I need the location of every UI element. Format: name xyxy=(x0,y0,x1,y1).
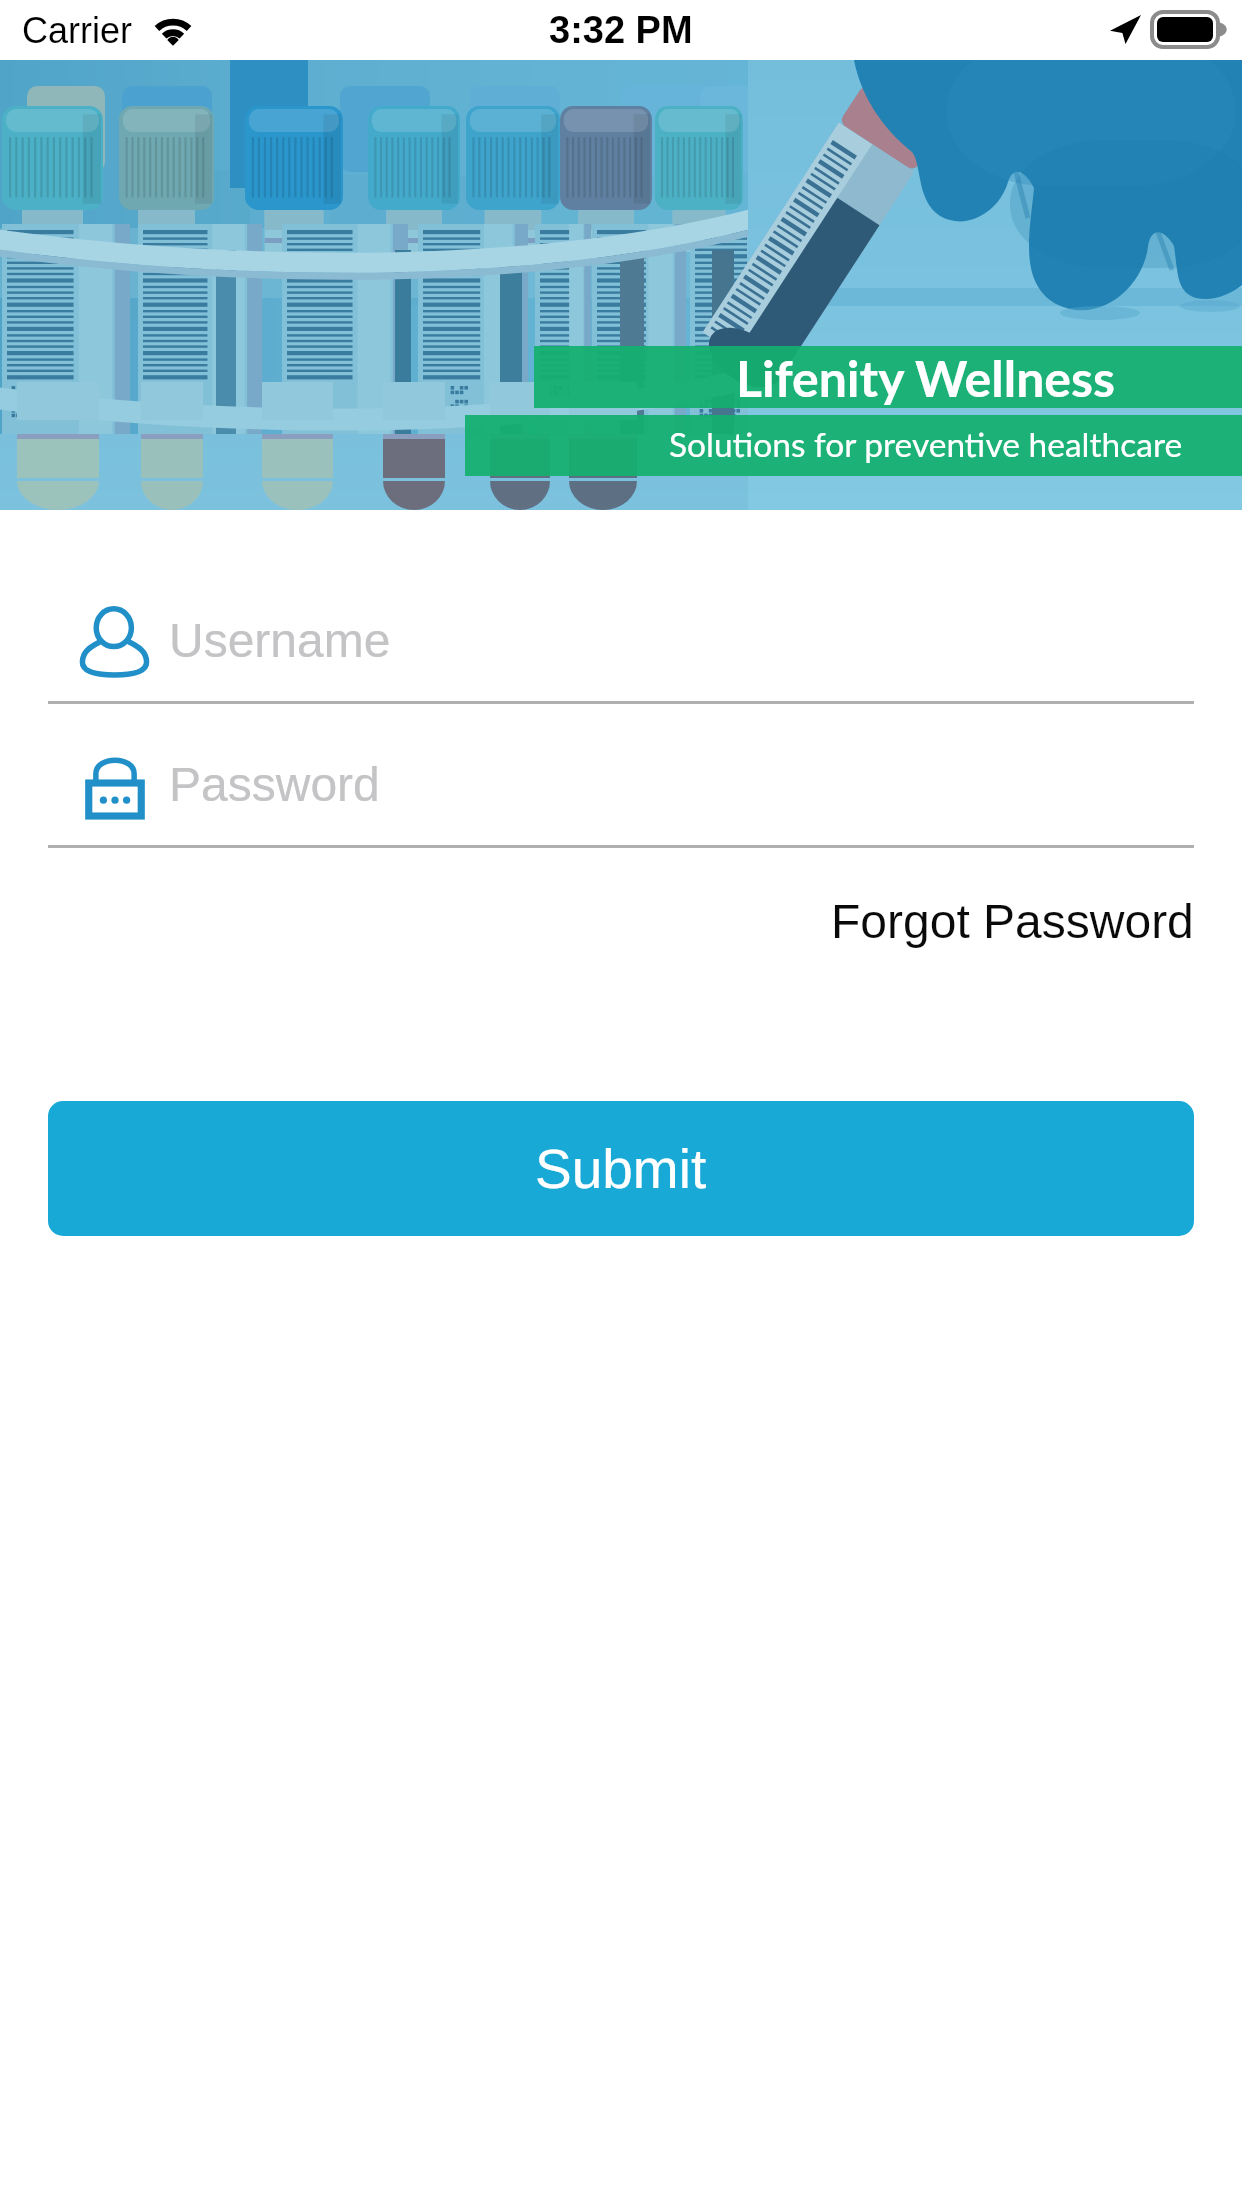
other: Battery xyxy=(1152,12,1228,47)
other: Username xyxy=(80,605,149,677)
staticText: Carrier xyxy=(22,10,133,50)
staticText: Username xyxy=(169,614,391,668)
staticText: Forgot Password xyxy=(831,895,1194,949)
staticText: Solutions for preventive healthcare xyxy=(669,424,1183,464)
button[interactable]: Username xyxy=(48,605,1194,677)
other: Wi-Fi xyxy=(148,12,198,46)
button[interactable]: Submit xyxy=(48,1101,1194,1236)
button[interactable]: Password xyxy=(48,749,1194,821)
staticText: Lifenity Wellness xyxy=(736,348,1115,408)
other: Password xyxy=(80,749,149,821)
button[interactable]: Forgot Password xyxy=(831,895,1194,949)
staticText: 3:32 PM xyxy=(549,9,693,51)
other: Location xyxy=(1110,15,1141,44)
staticText: Password xyxy=(169,758,380,812)
staticText: Submit xyxy=(535,1138,707,1199)
